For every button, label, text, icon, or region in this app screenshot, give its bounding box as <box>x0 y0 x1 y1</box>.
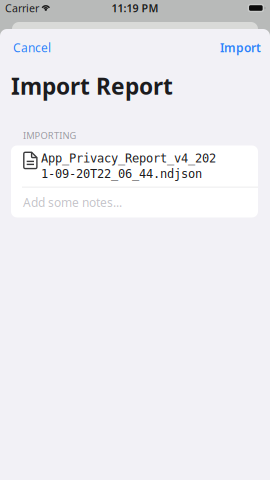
staticText: Cancel <box>13 39 51 55</box>
staticText: 1-09-20T22_06_44.ndjson <box>41 167 202 181</box>
staticText: App_Privacy_Report_v4_202 <box>41 151 216 165</box>
staticText: Add some notes... <box>23 194 122 210</box>
button[interactable]: Cancel <box>0 32 64 62</box>
staticText: Carrier <box>5 1 39 15</box>
staticText: Import <box>220 39 261 55</box>
staticText: Import Report <box>11 71 173 101</box>
staticText: IMPORTING <box>23 129 77 141</box>
button[interactable]: Import <box>211 32 270 62</box>
staticText: 11:19 PM <box>111 1 158 15</box>
